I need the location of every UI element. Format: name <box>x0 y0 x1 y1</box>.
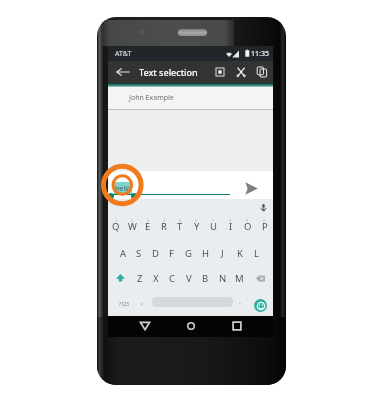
staticText: D <box>152 247 159 260</box>
staticText: 11:35 <box>251 49 269 59</box>
button[interactable]: N <box>214 266 231 291</box>
button[interactable]: 1 <box>108 216 124 241</box>
staticText: T <box>177 220 183 233</box>
staticText: 6 <box>195 218 198 223</box>
staticText: 4 <box>163 218 166 223</box>
button[interactable]: X <box>148 266 164 291</box>
button[interactable]: Voice input <box>258 202 269 213</box>
button[interactable]: 2 <box>124 216 140 241</box>
staticText: Q <box>112 220 120 233</box>
staticText: U <box>210 220 217 233</box>
button[interactable]: Cut <box>231 61 251 83</box>
button[interactable]: Recent apps <box>227 316 247 336</box>
staticText: Text selection <box>139 66 198 78</box>
staticText: 5 <box>179 218 182 223</box>
staticText: R <box>161 220 167 233</box>
staticText: E <box>145 220 151 233</box>
staticText: O <box>244 220 252 233</box>
staticText: 3 <box>147 218 150 223</box>
staticText: 7 <box>212 218 215 223</box>
button[interactable]: , <box>134 291 150 316</box>
button[interactable]: Z <box>132 266 148 291</box>
staticText: 1 <box>115 218 118 223</box>
staticText: G <box>185 247 192 260</box>
button[interactable]: J <box>214 241 231 266</box>
button[interactable]: Home <box>181 316 201 336</box>
button[interactable]: Backspace <box>248 266 273 291</box>
button[interactable]: Shift <box>108 266 132 291</box>
button[interactable]: K <box>231 241 248 266</box>
staticText: V <box>186 272 192 285</box>
button[interactable]: 4 <box>156 216 172 241</box>
button[interactable]: 8 <box>222 216 239 241</box>
staticText: L <box>254 247 259 260</box>
button[interactable]: H <box>197 241 214 266</box>
staticText: 8 <box>229 218 232 223</box>
button[interactable]: A <box>115 241 131 266</box>
staticText: X <box>153 272 159 285</box>
staticText: AT&T <box>115 49 132 59</box>
button[interactable]: D <box>147 241 163 266</box>
staticText: , <box>141 297 143 307</box>
staticText: I <box>229 220 233 233</box>
staticText: H <box>202 247 210 260</box>
button[interactable]: . <box>232 291 248 316</box>
button[interactable]: 9 <box>239 216 256 241</box>
button[interactable]: 0 <box>256 216 273 241</box>
staticText: 9 <box>246 218 249 223</box>
staticText: M <box>235 272 244 285</box>
button[interactable]: M <box>231 266 248 291</box>
staticText: B <box>202 272 209 285</box>
button[interactable]: Symbols <box>112 291 136 316</box>
staticText: A <box>120 247 127 260</box>
button[interactable]: S <box>131 241 147 266</box>
button[interactable]: Send <box>243 180 260 197</box>
staticText: Y <box>194 220 200 233</box>
button[interactable]: 6 <box>188 216 205 241</box>
staticText: John Example <box>129 93 174 103</box>
button[interactable]: Back <box>135 316 155 336</box>
staticText: . <box>239 297 241 307</box>
staticText: S <box>136 247 142 260</box>
button[interactable]: G <box>180 241 197 266</box>
staticText: N <box>219 272 227 285</box>
button[interactable]: 5 <box>172 216 188 241</box>
staticText: J <box>221 247 224 260</box>
button[interactable]: C <box>164 266 180 291</box>
button[interactable]: 3 <box>140 216 156 241</box>
staticText: C <box>169 272 176 285</box>
staticText: 2 <box>131 218 134 223</box>
staticText: ?123 <box>119 301 129 307</box>
button[interactable]: Copy <box>252 61 272 83</box>
staticText: 0 <box>263 218 266 223</box>
staticText: Z <box>137 272 143 285</box>
staticText: K <box>237 247 243 260</box>
button[interactable]: Select all <box>210 61 230 83</box>
button[interactable]: Emoji <box>251 296 269 314</box>
staticText: P <box>262 220 268 233</box>
button[interactable]: Navigate up <box>112 61 134 83</box>
button[interactable]: F <box>163 241 180 266</box>
staticText: Hello <box>115 184 131 193</box>
button[interactable]: V <box>180 266 197 291</box>
staticText: F <box>169 247 174 260</box>
button[interactable]: 7 <box>205 216 222 241</box>
staticText: W <box>128 220 137 233</box>
button[interactable]: B <box>197 266 214 291</box>
button[interactable]: L <box>248 241 265 266</box>
